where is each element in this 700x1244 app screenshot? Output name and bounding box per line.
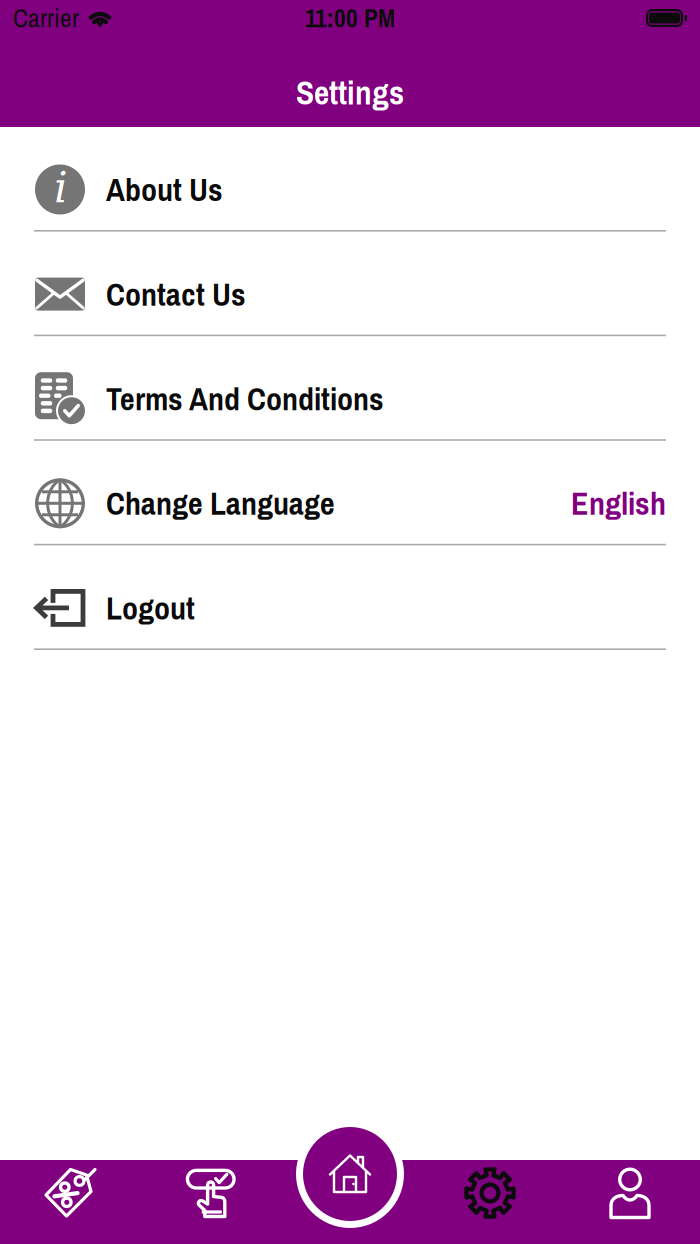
staticText: About Us bbox=[106, 168, 223, 211]
button[interactable]: Offers bbox=[0, 1160, 140, 1244]
staticText: Change Language bbox=[106, 482, 335, 525]
staticText: i bbox=[54, 163, 68, 212]
staticText: Settings bbox=[296, 70, 404, 115]
button[interactable]: Bookings bbox=[140, 1160, 280, 1244]
staticText: Terms And Conditions bbox=[106, 377, 384, 420]
staticText: 11:00 PM bbox=[305, 1, 395, 35]
button[interactable]: Profile bbox=[560, 1160, 700, 1244]
staticText: English bbox=[571, 482, 666, 525]
staticText: Carrier bbox=[13, 1, 79, 35]
button[interactable]: Settings bbox=[420, 1160, 560, 1244]
button[interactable]: Change Language bbox=[0, 441, 700, 545]
staticText: Contact Us bbox=[106, 272, 246, 316]
button[interactable]: i bbox=[0, 127, 700, 232]
button[interactable]: Contact Us bbox=[0, 232, 700, 336]
button[interactable]: Home bbox=[296, 1120, 404, 1228]
button[interactable]: Logout bbox=[0, 545, 700, 650]
staticText: Logout bbox=[106, 586, 195, 629]
button[interactable]: Terms And Conditions bbox=[0, 336, 700, 441]
